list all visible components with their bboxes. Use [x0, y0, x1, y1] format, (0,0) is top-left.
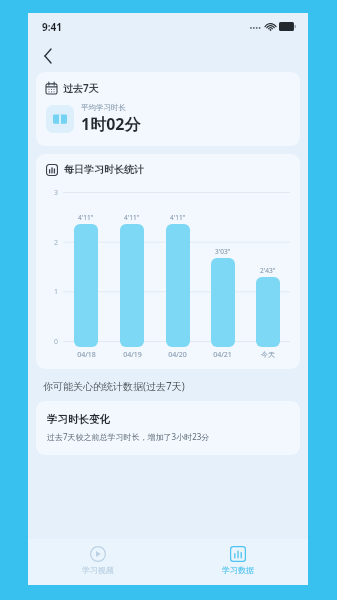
staticText: 04/18	[77, 350, 96, 360]
staticText: 学习时长变化	[47, 413, 110, 426]
staticText: 0	[54, 337, 59, 347]
staticText: 1时02分	[81, 113, 141, 135]
staticText: 平均学习时长	[81, 103, 126, 112]
button[interactable]: 学习数据	[168, 539, 308, 585]
staticText: 1	[54, 287, 59, 297]
button[interactable]: 学习视频	[28, 539, 168, 585]
staticText: 04/19	[123, 350, 142, 360]
staticText: 学习数据	[222, 565, 254, 575]
staticText: 你可能关心的统计数据(过去7天)	[43, 379, 185, 393]
staticText: 每日学习时长统计	[64, 163, 144, 176]
button[interactable]: Back	[34, 42, 62, 70]
staticText: 3	[54, 188, 59, 198]
staticText: 今天	[261, 350, 275, 359]
staticText: 3'03"	[215, 247, 231, 256]
staticText: 04/21	[213, 350, 232, 360]
staticText: 04/20	[168, 350, 187, 360]
staticText: 4'11"	[78, 213, 94, 222]
staticText: 2	[54, 238, 59, 248]
staticText: 9:41	[42, 20, 62, 34]
staticText: 过去7天	[63, 81, 99, 95]
staticText: 4'11"	[124, 213, 140, 222]
staticText: 2'43"	[260, 266, 276, 275]
staticText: 过去7天较之前总学习时长，增加了3小时23分	[47, 431, 210, 442]
staticText: 4'11"	[170, 213, 186, 222]
staticText: 学习视频	[82, 565, 114, 575]
button[interactable]: 每日学习时长统计	[36, 154, 300, 369]
button[interactable]: 过去7天	[36, 72, 300, 146]
button[interactable]: 学习时长变化	[36, 401, 300, 455]
